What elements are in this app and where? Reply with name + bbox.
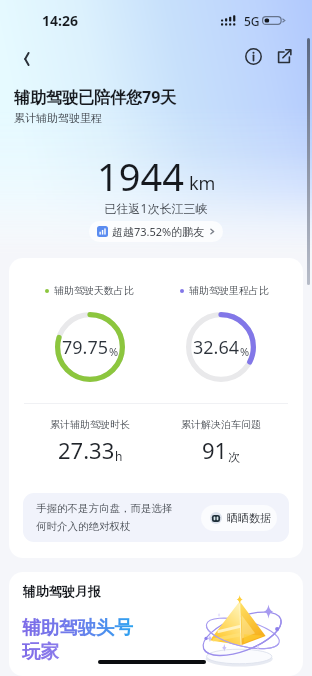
button[interactable]: Back <box>12 45 40 73</box>
staticText: 辅助驾驶头号 <box>22 616 133 639</box>
staticText: 91 <box>202 435 228 465</box>
staticText: 辅助驾驶天数占比 <box>54 284 134 297</box>
button[interactable]: Info <box>239 42 267 70</box>
staticText: 累计解决泊车问题 <box>181 418 261 431</box>
staticText: 14:26 <box>42 11 78 30</box>
staticText: 次 <box>228 449 240 464</box>
staticText: 79.75 <box>62 335 109 360</box>
staticText: 累计辅助驾驶里程 <box>14 111 102 125</box>
staticText: % <box>109 344 119 359</box>
staticText: 辅助驾驶已陪伴您79天 <box>14 86 177 108</box>
staticText: 辅助驾驶里程占比 <box>189 284 269 297</box>
staticText: 玩家 <box>22 640 59 663</box>
staticText: km <box>189 171 216 196</box>
staticText: 已往返1次长江三峡 <box>0 200 312 216</box>
button[interactable]: Share <box>270 42 298 70</box>
staticText: h <box>115 448 123 464</box>
staticText: 超越73.52%的鹏友 <box>112 224 205 239</box>
staticText: 手握的不是方向盘，而是选择 <box>36 502 173 515</box>
staticText: 辅助驾驶月报 <box>23 583 101 599</box>
staticText: 累计辅助驾驶时长 <box>50 418 130 431</box>
staticText: 32.64 <box>193 335 240 360</box>
button[interactable]: 超越73.52%的鹏友 <box>89 221 223 242</box>
staticText: 何时介入的绝对权杖 <box>36 520 131 533</box>
staticText: 27.33 <box>58 435 115 465</box>
staticText: 晒晒数据 <box>227 511 271 525</box>
button[interactable]: 晒晒数据 <box>201 505 277 531</box>
staticText: % <box>240 344 250 359</box>
staticText: 5G <box>244 13 260 29</box>
staticText: 1944 <box>97 150 184 202</box>
